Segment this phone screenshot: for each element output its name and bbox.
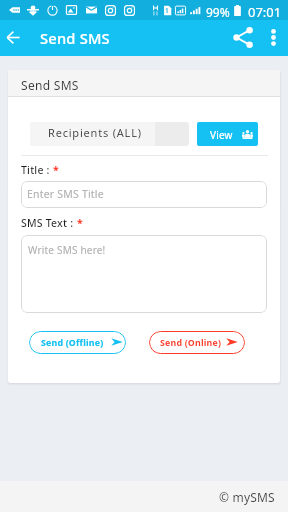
staticText: Send SMS [21, 77, 79, 93]
button[interactable]: Enter SMS Title [21, 181, 267, 208]
button[interactable]: Write SMS here! [21, 235, 267, 313]
staticText: Write SMS here! [28, 243, 106, 257]
button[interactable]: More options [260, 20, 288, 56]
staticText: Enter SMS Title [27, 187, 104, 201]
staticText: Title : [21, 163, 53, 177]
button[interactable]: Back [0, 20, 32, 56]
staticText: Send (Online) [160, 337, 222, 349]
staticText: * [53, 163, 59, 177]
staticText: 07:01 [248, 3, 282, 21]
button[interactable]: View [197, 122, 258, 146]
button[interactable]: Send (Online) [149, 331, 245, 354]
staticText: View [210, 128, 233, 142]
staticText: © mySMS [219, 489, 275, 505]
button[interactable]: Recipients (ALL) [30, 122, 189, 146]
button[interactable]: Send (Offline) [29, 331, 126, 354]
staticText: SMS Text : [21, 216, 77, 230]
staticText: * [77, 216, 83, 230]
staticText: Send SMS [40, 28, 110, 48]
staticText: Recipients (ALL) [48, 125, 142, 140]
staticText: 99% [206, 4, 230, 20]
staticText: Send (Offline) [41, 337, 104, 349]
button[interactable]: Share [228, 20, 260, 56]
